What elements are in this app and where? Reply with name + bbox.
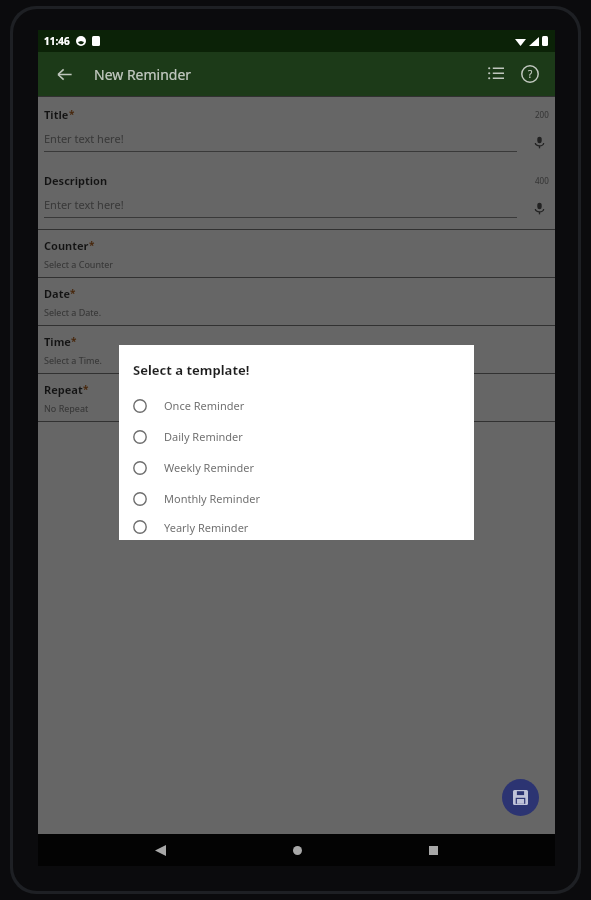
button[interactable]: Description	[38, 163, 555, 229]
staticText: Yearly Reminder	[164, 520, 249, 535]
staticText: Select a template!	[133, 361, 250, 379]
button[interactable]: Home	[282, 835, 312, 865]
staticText: ?	[528, 67, 533, 81]
staticText: New Reminder	[94, 65, 192, 84]
button[interactable]: Counter	[38, 230, 555, 277]
button[interactable]: Date	[38, 278, 555, 325]
staticText: Enter text here!	[44, 131, 124, 146]
button[interactable]: Yearly Reminder	[133, 514, 460, 540]
staticText: Daily Reminder	[164, 429, 243, 444]
staticText: 11:46	[44, 34, 70, 48]
button[interactable]: Back	[48, 58, 80, 90]
staticText: *	[83, 382, 89, 396]
button[interactable]: Time	[38, 326, 555, 373]
button[interactable]: Once Reminder	[133, 390, 460, 421]
staticText: *	[71, 334, 77, 348]
button[interactable]: Back	[145, 835, 175, 865]
staticText: Date	[44, 286, 70, 301]
button[interactable]: Help	[513, 57, 547, 91]
staticText: Select a Counter	[44, 258, 114, 270]
staticText: Description	[44, 173, 108, 188]
staticText: *	[69, 107, 75, 121]
button[interactable]: Weekly Reminder	[133, 452, 460, 483]
button[interactable]: Title	[38, 97, 555, 163]
staticText: Enter text here!	[44, 197, 124, 212]
button[interactable]: Daily Reminder	[133, 421, 460, 452]
button[interactable]: Recent apps	[418, 835, 448, 865]
staticText: Once Reminder	[164, 398, 245, 413]
staticText: Weekly Reminder	[164, 460, 255, 475]
staticText: Repeat	[44, 382, 83, 397]
button[interactable]: Templates list	[479, 57, 513, 91]
staticText: 400	[535, 175, 549, 186]
staticText: Time	[44, 334, 71, 349]
staticText: *	[89, 238, 95, 252]
staticText: Monthly Reminder	[164, 491, 260, 506]
staticText: Select a Time.	[44, 354, 102, 366]
staticText: Select a Date.	[44, 306, 102, 318]
staticText: Title	[44, 107, 69, 122]
button[interactable]: Save reminder	[502, 779, 539, 816]
button[interactable]: Monthly Reminder	[133, 483, 460, 514]
button[interactable]: Voice input	[529, 198, 549, 218]
staticText: *	[70, 286, 76, 300]
staticText: Counter	[44, 238, 89, 253]
staticText: No Repeat	[44, 402, 89, 414]
button[interactable]: Repeat	[38, 374, 555, 421]
staticText: 200	[535, 109, 549, 120]
button[interactable]: Voice input	[529, 132, 549, 152]
